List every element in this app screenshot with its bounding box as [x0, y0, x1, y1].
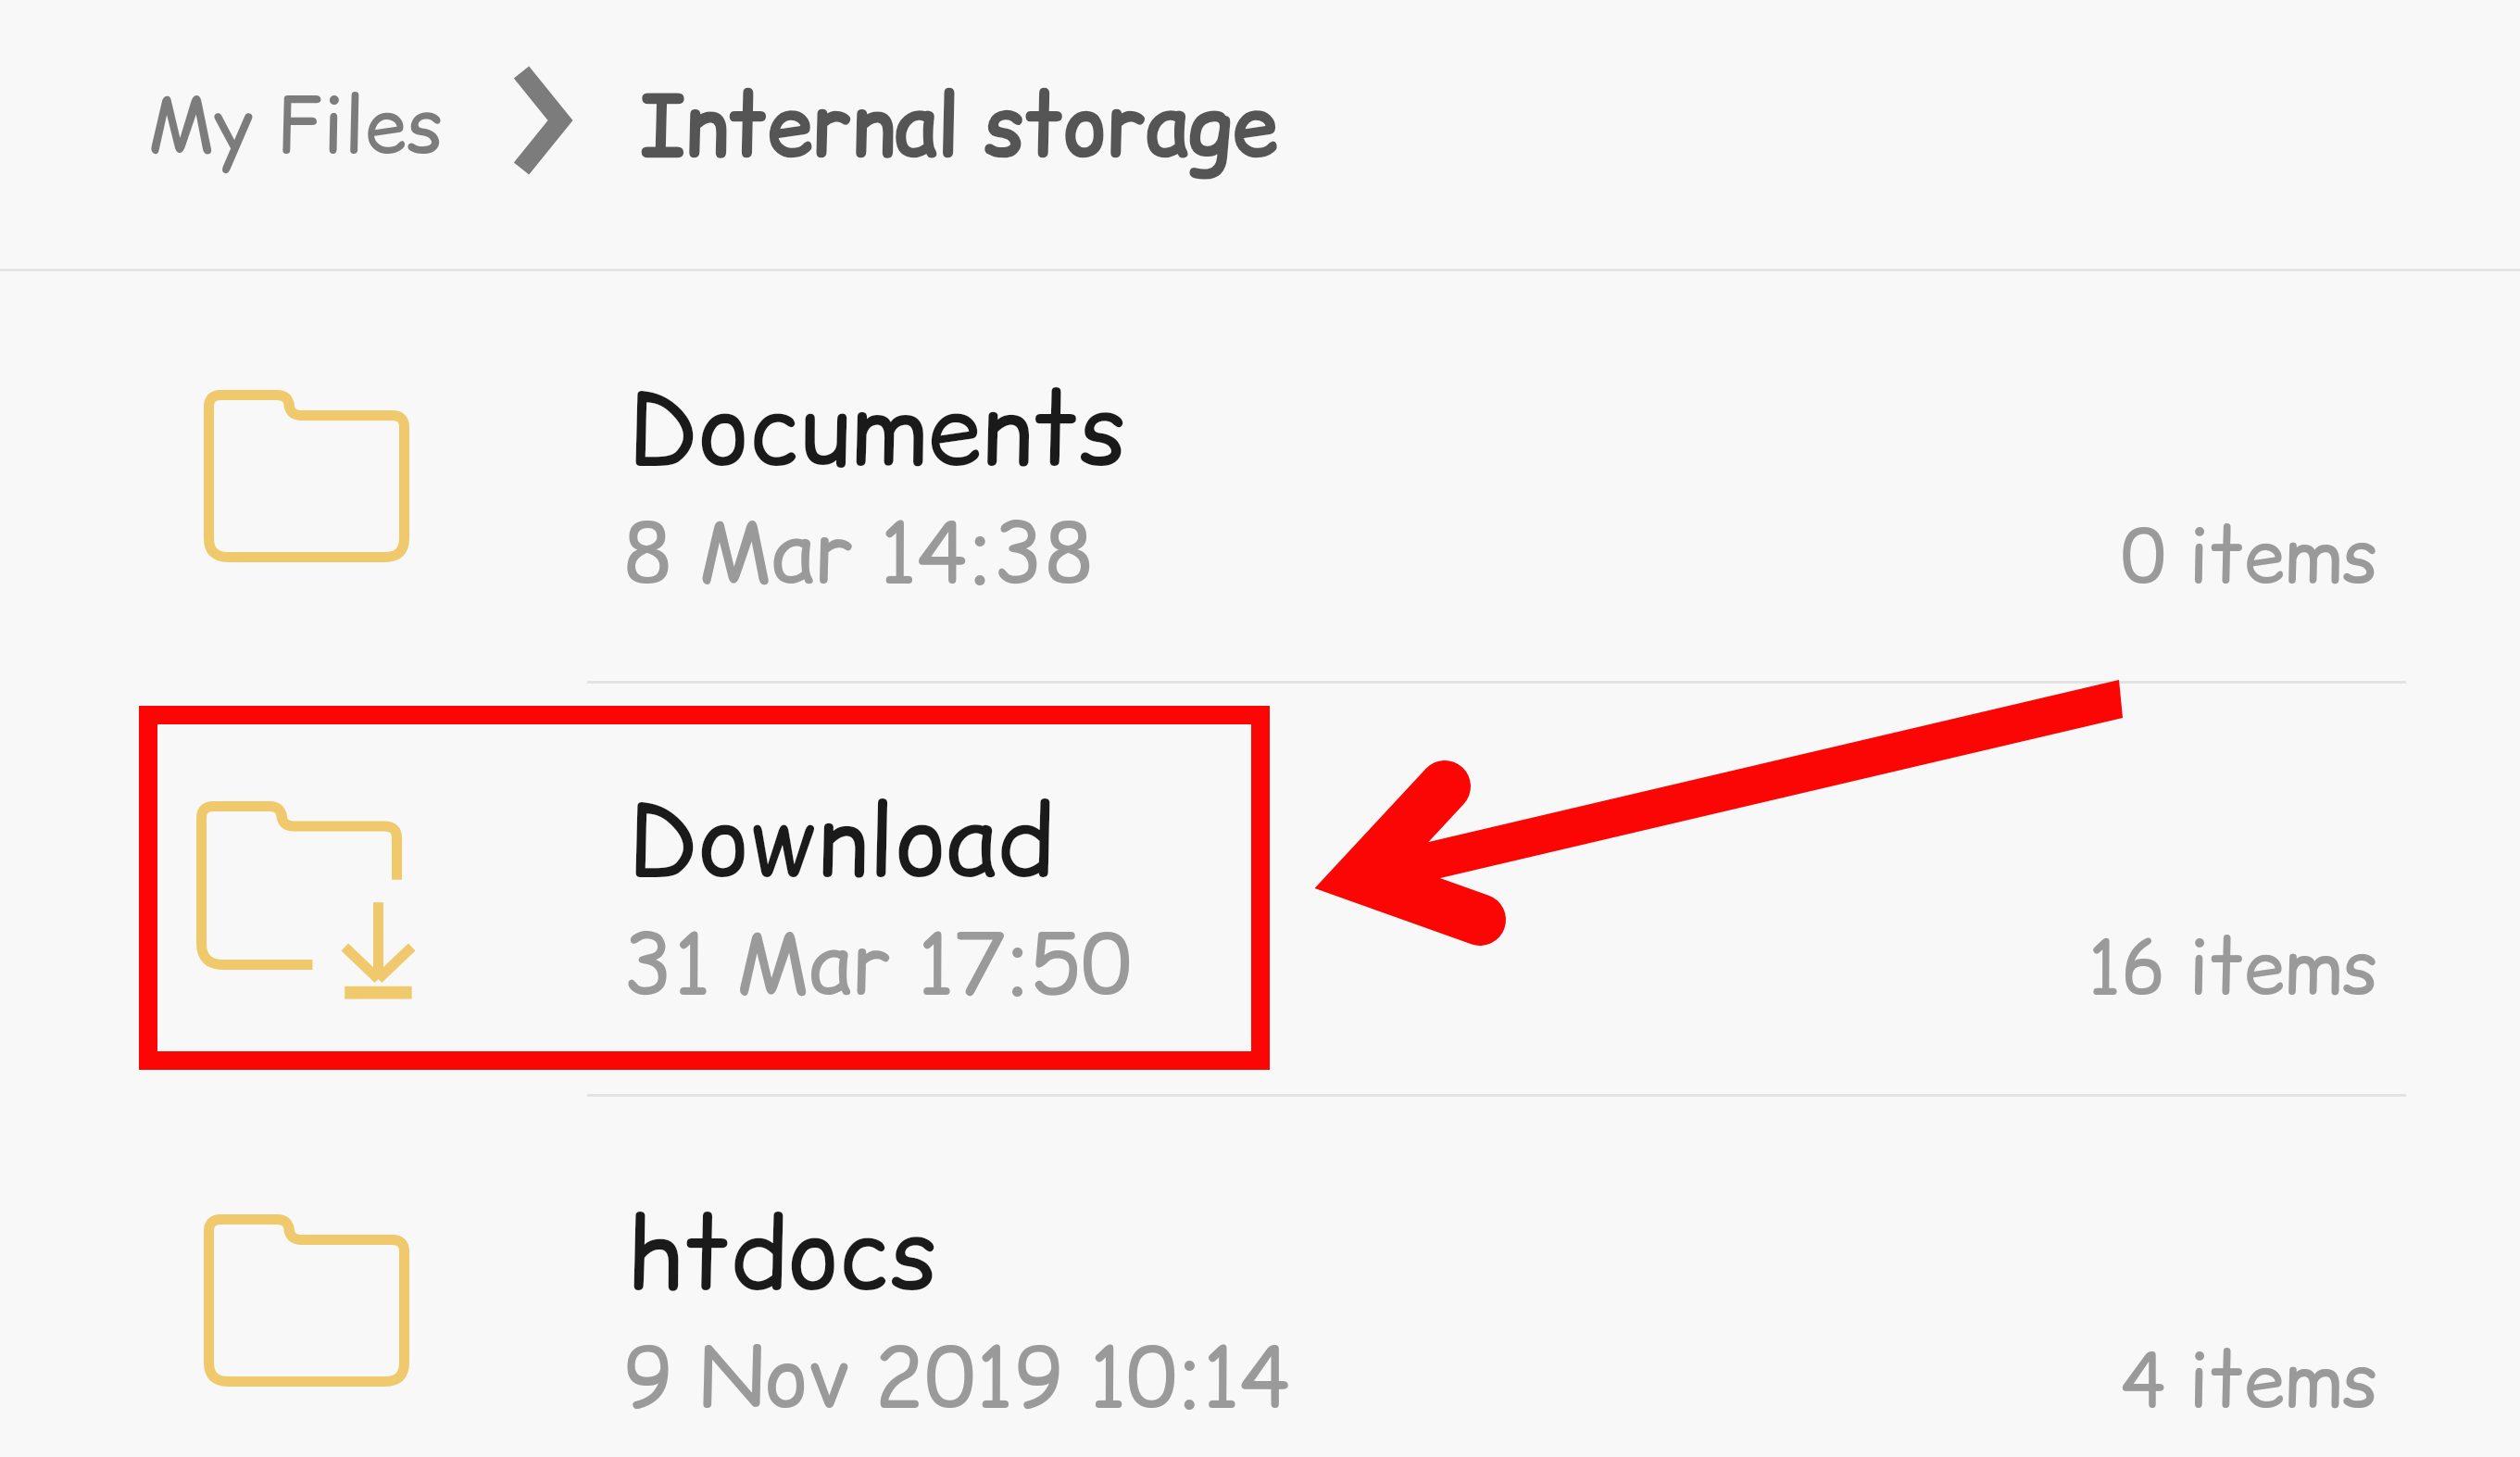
staticText: Internal storage [640, 68, 1278, 182]
button[interactable]: Documents [0, 270, 2520, 684]
staticText: 16 items [2087, 915, 2378, 1019]
staticText: 4 items [2121, 1328, 2378, 1432]
button[interactable]: Download [0, 682, 2520, 1095]
staticText: Documents [627, 360, 1127, 497]
staticText: Internal storage [640, 68, 1278, 182]
staticText: My Files [147, 72, 444, 178]
staticText: 8 Mar 14:38 [622, 494, 1095, 610]
button[interactable]: htdocs [0, 1095, 2520, 1457]
staticText: Download [627, 772, 1055, 909]
staticText: htdocs [627, 1185, 938, 1322]
staticText: 0 items [2121, 504, 2378, 608]
button[interactable]: My Files [135, 52, 432, 209]
other: Breadcrumb separator [491, 37, 602, 204]
staticText: 31 Mar 17:50 [622, 905, 1133, 1022]
staticText: 9 Nov 2019 10:14 [622, 1318, 1291, 1435]
